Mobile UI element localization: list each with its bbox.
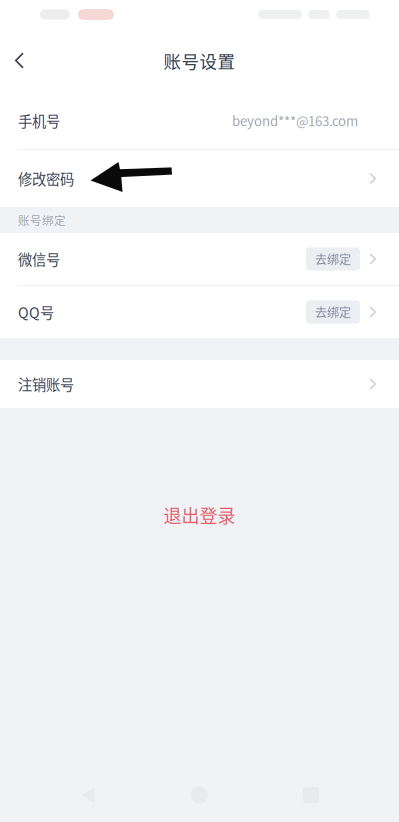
button[interactable]: Back	[0, 38, 43, 82]
staticText: 修改密码	[18, 168, 74, 189]
staticText: 账号设置	[163, 48, 235, 73]
button[interactable]: QQ号	[0, 286, 399, 338]
staticText: 微信号	[18, 249, 60, 269]
button[interactable]: 退出登录	[135, 499, 263, 531]
button[interactable]: 微信号	[0, 233, 399, 285]
staticText: 账号绑定	[18, 212, 66, 228]
staticText: QQ号	[18, 302, 54, 322]
button[interactable]: 注销账号	[0, 360, 399, 408]
staticText: beyond***@163.com	[232, 111, 358, 130]
staticText: 去绑定	[315, 250, 351, 268]
button[interactable]: 手机号	[0, 92, 399, 149]
staticText: 注销账号	[18, 374, 74, 394]
staticText: 退出登录	[163, 502, 235, 528]
button[interactable]: 修改密码	[0, 150, 399, 207]
staticText: 手机号	[18, 110, 60, 131]
staticText: 去绑定	[315, 303, 351, 321]
